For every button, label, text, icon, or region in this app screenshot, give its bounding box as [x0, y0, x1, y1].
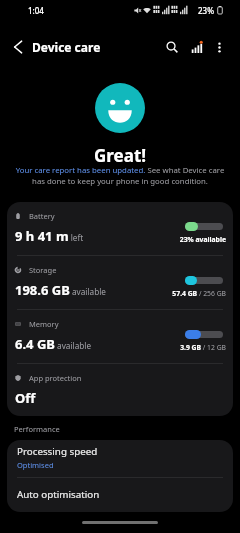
staticText: 6.4 GB available	[15, 335, 92, 353]
staticText: Memory	[29, 319, 59, 329]
staticText: Off	[15, 389, 36, 407]
staticText: 3.9 GB / 12 GB	[180, 343, 226, 352]
staticText: 1:04	[28, 5, 44, 16]
staticText: Processing speed	[17, 445, 98, 458]
button[interactable]: Battery	[7, 202, 233, 255]
staticText: Device care	[32, 39, 101, 55]
button[interactable]: Auto optimisation	[7, 478, 233, 512]
staticText: Performance	[14, 424, 60, 434]
staticText: Auto optimisation	[17, 488, 100, 501]
button[interactable]: Usage chart	[184, 34, 210, 60]
button[interactable]: Back	[4, 33, 32, 61]
staticText: Optimised	[17, 460, 54, 470]
staticText: Storage	[29, 265, 57, 275]
staticText: Your care report has been updated. See w…	[14, 165, 226, 187]
staticText: 23%	[198, 5, 214, 16]
button[interactable]: Memory	[7, 310, 233, 363]
staticText: 198.6 GB available	[15, 281, 106, 299]
button[interactable]: Processing speed	[7, 440, 233, 477]
staticText: 57.4 GB / 256 GB	[172, 289, 226, 298]
button[interactable]: More options	[206, 34, 232, 60]
staticText: 23% available	[179, 235, 226, 244]
staticText: Great!	[94, 144, 147, 167]
button[interactable]: Storage	[7, 256, 233, 309]
button[interactable]: Search	[159, 34, 185, 60]
staticText: App protection	[29, 373, 82, 383]
staticText: 9 h 41 m left	[15, 227, 84, 245]
button[interactable]: App protection	[7, 364, 233, 416]
staticText: Battery	[29, 211, 55, 221]
